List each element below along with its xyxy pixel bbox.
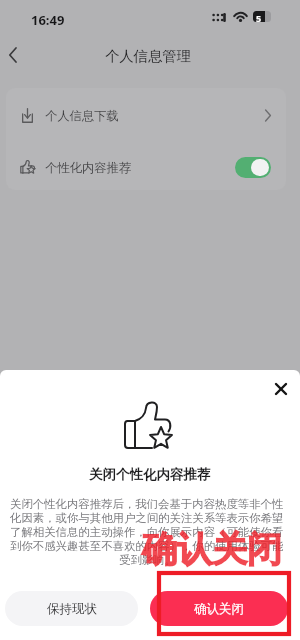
button[interactable]: 确认关闭	[150, 591, 288, 626]
button[interactable]: Close	[271, 379, 291, 399]
staticText: 确认关闭	[194, 601, 244, 617]
staticText: 关闭个性化内容推荐后，我们会基于内容热度等非个性	[10, 497, 284, 511]
button[interactable]: 个性化内容推荐	[6, 141, 286, 193]
staticText: 个人信息下载	[45, 108, 119, 123]
staticText: 受到影响。	[119, 553, 176, 567]
staticText: 个性化内容推荐	[45, 160, 132, 175]
staticText: 化因素，或你与其他用户之间的关注关系等表示你希望	[10, 511, 284, 525]
staticText: 确认关闭	[142, 527, 282, 571]
staticText: 关闭个性化内容推荐	[89, 466, 211, 483]
button[interactable]: 个人信息下载	[6, 89, 286, 141]
staticText: 保持现状	[47, 601, 97, 617]
staticText: 个人信息管理	[105, 47, 191, 65]
button[interactable]: Back	[0, 43, 24, 67]
button[interactable]: 保持现状	[5, 591, 138, 626]
button[interactable]: Toggle personalized recommendations	[235, 157, 271, 178]
staticText: 16:49	[31, 11, 65, 29]
staticText: 5	[256, 12, 262, 22]
staticText: 到你不感兴趣甚至不喜欢的内容），你的使用体验可能	[10, 539, 284, 553]
staticText: 了解相关信息的主动操作，向你展示内容（可能使你看	[10, 525, 284, 539]
